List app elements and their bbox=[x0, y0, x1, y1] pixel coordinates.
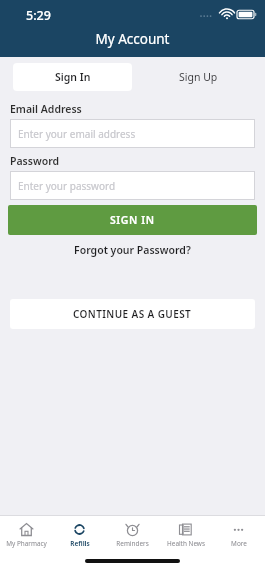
other: My Pharmacy bbox=[19, 522, 34, 537]
button[interactable]: Enter your password bbox=[10, 171, 255, 200]
staticText: Enter your email address bbox=[18, 127, 136, 141]
button[interactable]: Sign Up bbox=[132, 63, 265, 91]
staticText: Password bbox=[10, 154, 60, 168]
staticText: Forgot your Password? bbox=[74, 243, 191, 257]
button[interactable]: CONTINUE AS A GUEST bbox=[10, 299, 255, 329]
staticText: Refills bbox=[70, 539, 90, 548]
staticText: Enter your password bbox=[18, 179, 116, 193]
other: Health News bbox=[178, 522, 193, 537]
other: Refills bbox=[72, 522, 87, 537]
button[interactable]: More bbox=[212, 516, 265, 553]
staticText: More bbox=[231, 539, 247, 548]
staticText: Health News bbox=[167, 539, 205, 548]
staticText: Email Address bbox=[10, 102, 82, 116]
button[interactable]: SIGN IN bbox=[8, 205, 257, 235]
staticText: Sign Up bbox=[179, 70, 218, 84]
staticText: SIGN IN bbox=[110, 213, 155, 227]
staticText: CONTINUE AS A GUEST bbox=[73, 307, 192, 321]
button[interactable]: Sign In bbox=[13, 63, 132, 91]
staticText: My Pharmacy bbox=[6, 539, 47, 548]
other: More bbox=[231, 522, 246, 537]
staticText: My Account bbox=[0, 30, 265, 48]
staticText: Reminders bbox=[116, 539, 149, 548]
button[interactable]: Health News bbox=[159, 516, 212, 553]
button[interactable]: My Pharmacy bbox=[0, 516, 53, 553]
button[interactable]: Refills bbox=[53, 516, 106, 553]
button[interactable]: Reminders bbox=[106, 516, 159, 553]
button[interactable]: Forgot your Password? bbox=[0, 243, 265, 257]
staticText: 5:29 bbox=[26, 7, 51, 24]
other: Reminders bbox=[125, 522, 140, 537]
staticText: Sign In bbox=[55, 70, 91, 84]
button[interactable]: Enter your email address bbox=[10, 119, 255, 148]
